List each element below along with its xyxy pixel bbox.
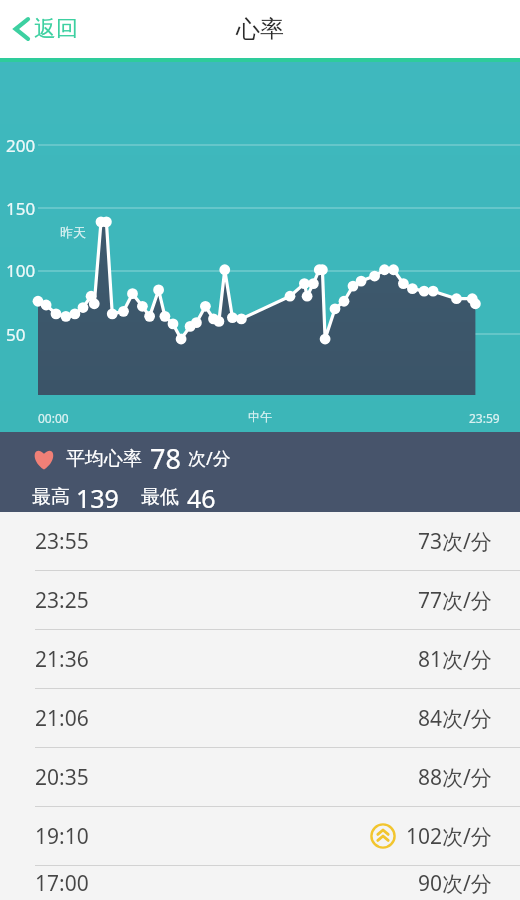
button[interactable]: 平均心率 <box>0 432 520 512</box>
button[interactable]: 17:00 <box>0 866 520 900</box>
button[interactable]: 23:25 <box>0 571 520 629</box>
staticText: 昨天 <box>60 224 86 240</box>
staticText: 返回 <box>34 15 78 43</box>
staticText: 平均心率 <box>66 447 142 471</box>
staticText: 00:00 <box>38 410 69 426</box>
button[interactable]: 23:55 <box>0 512 520 570</box>
staticText: 23:25 <box>35 586 89 615</box>
staticText: 21:36 <box>35 645 89 674</box>
staticText: 心率 <box>236 14 284 44</box>
staticText: 84次/分 <box>418 704 492 733</box>
staticText: 73次/分 <box>418 527 492 556</box>
staticText: 102次/分 <box>406 822 492 851</box>
staticText: 78 <box>150 440 181 477</box>
staticText: 100 <box>6 259 36 282</box>
staticText: 139 <box>76 481 119 512</box>
staticText: 200 <box>6 134 36 157</box>
staticText: 77次/分 <box>418 586 492 615</box>
button[interactable]: 21:06 <box>0 689 520 747</box>
staticText: 20:35 <box>35 763 89 792</box>
staticText: 次/分 <box>188 446 231 471</box>
staticText: 88次/分 <box>418 763 492 792</box>
other: High heart rate <box>370 823 396 849</box>
staticText: 150 <box>6 197 36 220</box>
button[interactable]: 20:35 <box>0 748 520 806</box>
button[interactable]: 21:36 <box>0 630 520 688</box>
staticText: 50 <box>6 323 26 346</box>
staticText: 23:55 <box>35 527 89 556</box>
button[interactable]: 19:10 <box>0 807 520 865</box>
staticText: 46 <box>187 481 216 512</box>
button[interactable]: 返回 <box>0 9 92 49</box>
staticText: 23:59 <box>469 410 500 426</box>
staticText: 中午 <box>248 409 272 424</box>
staticText: 90次/分 <box>418 869 492 898</box>
staticText: 17:00 <box>35 869 89 898</box>
staticText: 最低 <box>141 485 179 509</box>
staticText: 21:06 <box>35 704 89 733</box>
staticText: 81次/分 <box>418 645 492 674</box>
staticText: 最高 <box>32 485 70 509</box>
staticText: 19:10 <box>35 822 89 851</box>
